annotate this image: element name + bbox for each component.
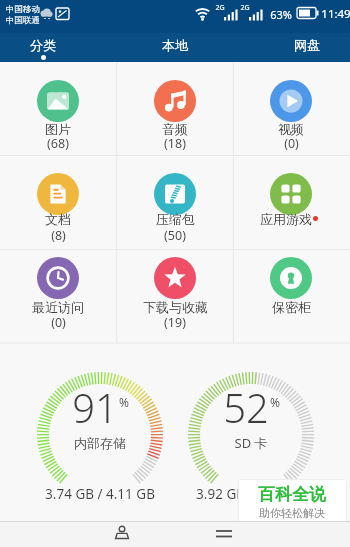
button[interactable] bbox=[0, 33, 117, 62]
button[interactable]: 保密柜 bbox=[233, 250, 350, 344]
staticText: 百科全说 bbox=[258, 484, 326, 505]
button[interactable] bbox=[238, 479, 347, 526]
staticText: 下载与收藏 bbox=[143, 299, 208, 315]
staticText: 视频 bbox=[278, 121, 304, 137]
staticText: 52 bbox=[223, 380, 269, 434]
button[interactable]: 视频 bbox=[233, 62, 350, 156]
staticText: 分类 bbox=[30, 37, 56, 53]
staticText: 本地 bbox=[162, 37, 188, 53]
staticText: 2G bbox=[240, 3, 250, 13]
staticText: 助你轻松解决 bbox=[259, 506, 325, 520]
button[interactable] bbox=[87, 521, 157, 547]
staticText: % bbox=[119, 394, 129, 410]
staticText: (0) bbox=[51, 314, 66, 331]
button[interactable]: 下载与收藏 bbox=[117, 250, 234, 344]
staticText: 中国移动 bbox=[6, 4, 40, 15]
button[interactable]: 图片 bbox=[0, 62, 117, 156]
staticText: SD 卡 bbox=[234, 434, 268, 452]
staticText: 11:49 bbox=[321, 6, 350, 22]
staticText: (19) bbox=[164, 314, 186, 331]
staticText: 内部存储 bbox=[74, 435, 126, 451]
staticText: 中国联通 bbox=[6, 15, 40, 26]
staticText: 63% bbox=[270, 7, 292, 22]
button[interactable]: 音频 bbox=[117, 62, 234, 156]
staticText: (50) bbox=[164, 227, 186, 244]
button[interactable] bbox=[117, 33, 233, 62]
button[interactable] bbox=[233, 33, 350, 62]
staticText: 应用游戏 bbox=[260, 211, 312, 227]
staticText: 保密柜 bbox=[272, 299, 311, 315]
staticText: 3.92 GB / 7.21 GB bbox=[196, 485, 306, 503]
staticText: 91 bbox=[72, 380, 118, 434]
staticText: (0) bbox=[284, 135, 299, 152]
button[interactable]: 最近访问 bbox=[0, 250, 117, 344]
staticText: 2G bbox=[215, 3, 225, 13]
button[interactable]: 压缩包 bbox=[117, 156, 234, 250]
staticText: 网盘 bbox=[294, 37, 320, 53]
button[interactable]: 应用游戏 bbox=[233, 156, 350, 250]
staticText: (8) bbox=[51, 227, 66, 244]
staticText: % bbox=[270, 394, 280, 410]
staticText: 3.74 GB / 4.11 GB bbox=[45, 485, 155, 503]
staticText: 音频 bbox=[162, 121, 188, 137]
button[interactable] bbox=[189, 521, 259, 547]
staticText: (18) bbox=[164, 135, 186, 152]
staticText: 文档 bbox=[45, 211, 71, 227]
staticText: 压缩包 bbox=[156, 211, 195, 227]
button[interactable]: 文档 bbox=[0, 156, 117, 250]
staticText: 最近访问 bbox=[32, 299, 84, 315]
staticText: (68) bbox=[47, 135, 69, 152]
staticText: 图片 bbox=[45, 121, 71, 137]
